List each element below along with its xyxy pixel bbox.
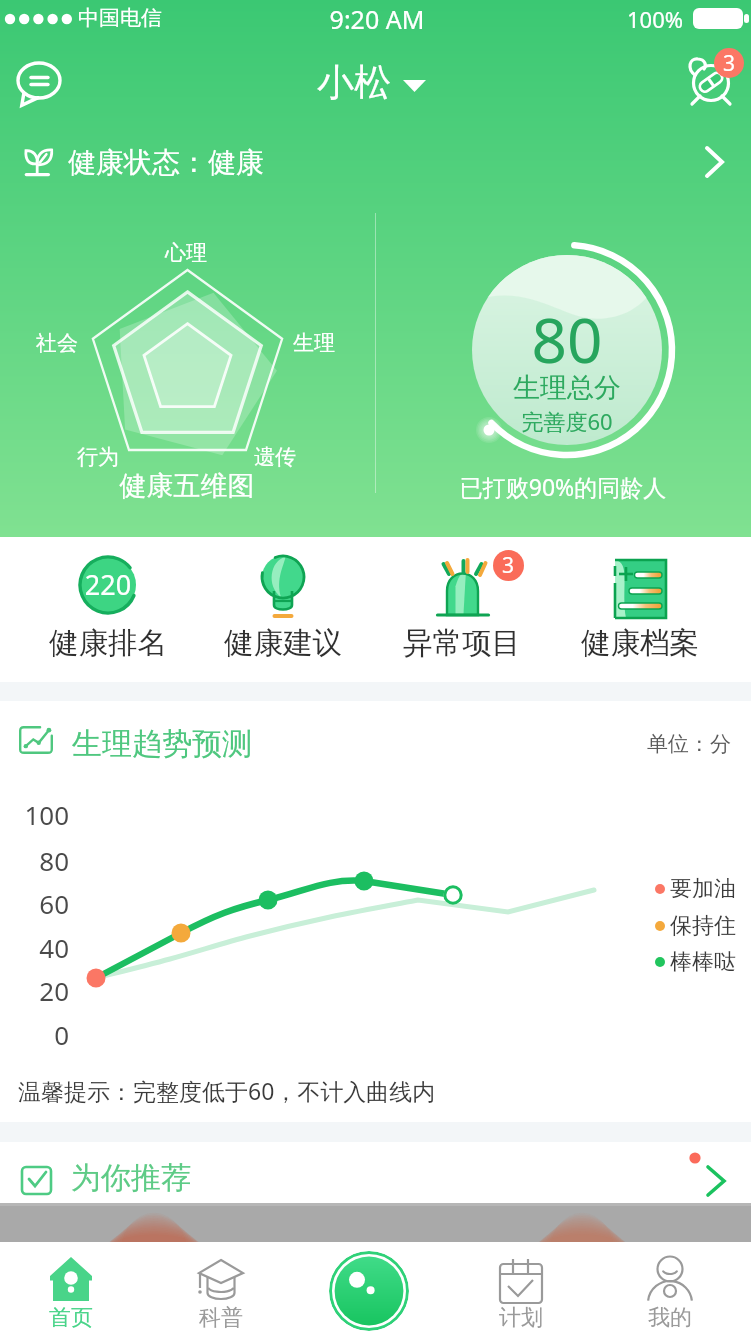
staticText: 健康档案 bbox=[560, 625, 720, 662]
staticText: 单位：分 bbox=[500, 731, 731, 757]
button[interactable]: Reminders bbox=[681, 43, 743, 105]
button[interactable]: 小松 bbox=[309, 55, 434, 110]
button[interactable]: Messages bbox=[12, 56, 68, 112]
staticText: 棒棒哒 bbox=[670, 948, 736, 976]
button[interactable] bbox=[578, 542, 702, 672]
staticText: 计划 bbox=[461, 1304, 581, 1332]
button[interactable] bbox=[610, 1242, 730, 1334]
staticText: 0 bbox=[0, 1017, 69, 1052]
staticText: 100 bbox=[0, 797, 69, 832]
button[interactable]: 健康状态：健康 bbox=[0, 132, 751, 196]
staticText: 中国电信 bbox=[78, 5, 162, 31]
staticText: 100% bbox=[598, 4, 683, 34]
button[interactable] bbox=[161, 1242, 281, 1334]
staticText: 我的 bbox=[610, 1304, 730, 1332]
staticText: 220 bbox=[48, 566, 168, 603]
staticText: 80 bbox=[0, 843, 69, 878]
staticText: 完善度60 bbox=[467, 406, 667, 436]
staticText: 3 bbox=[723, 49, 736, 78]
staticText: 异常项目 bbox=[382, 625, 542, 662]
staticText: 小松 bbox=[317, 59, 391, 106]
button[interactable] bbox=[461, 1242, 581, 1334]
staticText: 9:20 AM bbox=[277, 2, 477, 36]
staticText: 健康五维图 bbox=[87, 469, 287, 503]
staticText: 行为 bbox=[77, 444, 119, 470]
staticText: 60 bbox=[0, 886, 69, 921]
staticText: 保持住 bbox=[670, 912, 736, 940]
staticText: 健康建议 bbox=[203, 625, 363, 662]
button[interactable] bbox=[11, 1242, 131, 1334]
staticText: 生理 bbox=[293, 330, 335, 356]
staticText: 生理总分 bbox=[467, 371, 667, 405]
staticText: 40 bbox=[0, 930, 69, 965]
staticText: 心理 bbox=[165, 240, 207, 266]
button[interactable]: 为你推荐 bbox=[0, 1142, 751, 1203]
staticText: 20 bbox=[0, 973, 69, 1008]
staticText: 温馨提示：完整度低于60，不计入曲线内 bbox=[18, 1075, 436, 1106]
staticText: 为你推荐 bbox=[71, 1159, 191, 1197]
staticText: 健康排名 bbox=[28, 625, 188, 662]
staticText: 健康状态：健康 bbox=[68, 145, 264, 180]
staticText: 要加油 bbox=[670, 875, 736, 903]
staticText: 3 bbox=[502, 551, 515, 580]
staticText: 首页 bbox=[11, 1304, 131, 1332]
staticText: 80 bbox=[467, 297, 667, 381]
staticText: 已打败90%的同龄人 bbox=[443, 471, 683, 502]
button[interactable] bbox=[221, 542, 345, 672]
button[interactable] bbox=[46, 542, 170, 672]
staticText: 遗传 bbox=[254, 444, 296, 470]
button[interactable]: Scan bbox=[329, 1251, 409, 1331]
staticText: 社会 bbox=[36, 330, 78, 356]
staticText: 科普 bbox=[161, 1304, 281, 1332]
button[interactable] bbox=[400, 542, 524, 672]
staticText: 生理趋势预测 bbox=[72, 725, 252, 763]
